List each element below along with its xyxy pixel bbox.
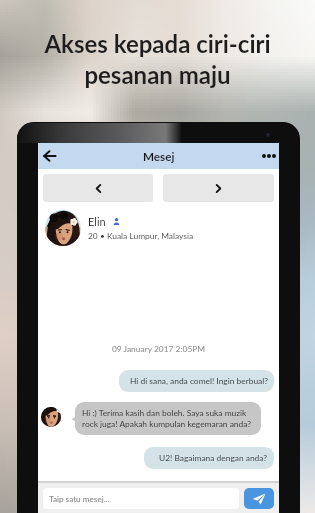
button[interactable]: Next — [163, 174, 274, 202]
button[interactable]: Taip satu mesej... — [43, 488, 239, 509]
staticText: Hi di sana, anda comel! Ingin berbual? — [130, 376, 268, 386]
staticText: 20 • Kuala Lumpur, Malaysia — [88, 231, 194, 241]
staticText: Taip satu mesej... — [49, 494, 110, 504]
button[interactable]: Back — [39, 146, 59, 166]
staticText: Elin — [88, 215, 106, 228]
staticText: Mesej — [143, 149, 175, 163]
staticText: Akses kepada ciri-ciri pesanan maju — [44, 29, 271, 89]
button[interactable]: U2! Bagaimana dengan anda? — [144, 447, 274, 469]
button[interactable]: Elin — [38, 210, 279, 246]
button[interactable]: Hi di sana, anda comel! Ingin berbual? — [119, 370, 274, 392]
button[interactable]: Previous — [43, 174, 153, 202]
staticText: 09 January 2017 2:05PM — [38, 344, 279, 354]
button[interactable]: Hi :) Terima kasih dan boleh. Saya suka … — [75, 402, 261, 435]
staticText: Hi :) Terima kasih dan boleh. Saya suka … — [82, 408, 254, 429]
staticText: U2! Bagaimana dengan anda? — [159, 453, 268, 463]
button[interactable]: Send — [244, 488, 274, 509]
button[interactable]: More options — [259, 146, 279, 166]
